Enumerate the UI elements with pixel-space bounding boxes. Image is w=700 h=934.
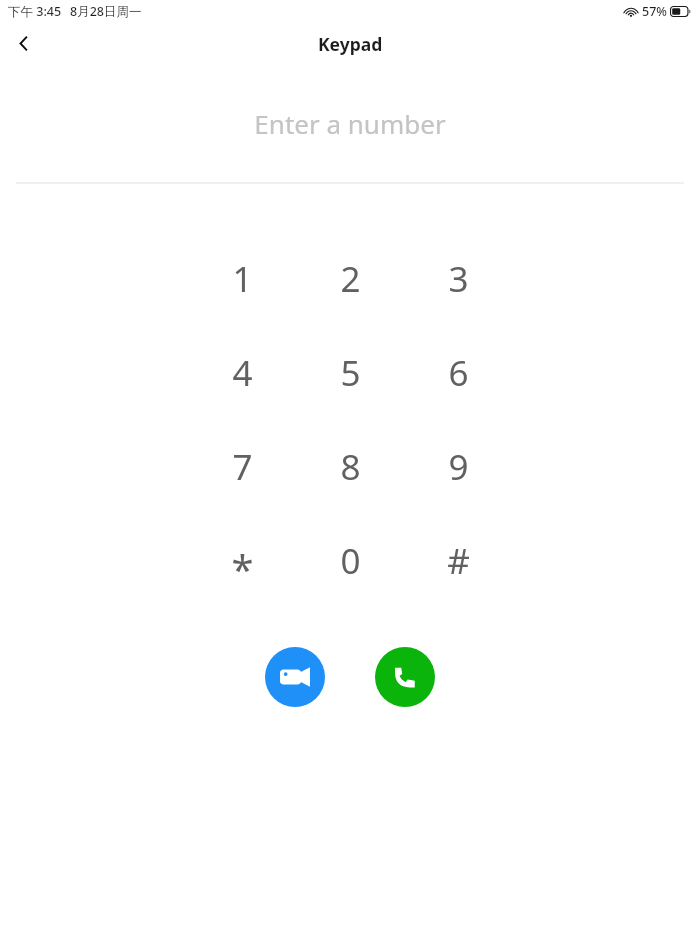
button[interactable]: Call [375, 647, 435, 707]
staticText: 下午 3:45 [8, 3, 62, 20]
staticText: # [447, 537, 470, 585]
staticText: Enter a number [254, 106, 446, 141]
button[interactable]: 9 [404, 420, 512, 514]
button[interactable]: Video call [265, 647, 325, 707]
staticText: 7 [232, 443, 253, 491]
button[interactable]: # [404, 514, 512, 608]
staticText: 6 [448, 349, 469, 397]
button[interactable]: * [188, 514, 296, 608]
staticText: 1 [232, 255, 253, 303]
staticText: 9 [448, 443, 469, 491]
staticText: 3 [448, 255, 469, 303]
staticText: 8 [340, 443, 361, 491]
staticText: 4 [232, 349, 253, 397]
button[interactable]: 2 [296, 232, 404, 326]
button[interactable]: Enter a number [0, 64, 700, 182]
staticText: * [231, 541, 254, 595]
button[interactable]: 8 [296, 420, 404, 514]
button[interactable]: 5 [296, 326, 404, 420]
button[interactable]: 0 [296, 514, 404, 608]
button[interactable]: Back [0, 23, 46, 64]
staticText: 0 [340, 537, 361, 585]
staticText: Keypad [318, 32, 383, 56]
staticText: 57% [642, 3, 667, 20]
staticText: 8月28日周一 [70, 3, 142, 20]
staticText: 5 [340, 349, 361, 397]
button[interactable]: 7 [188, 420, 296, 514]
staticText: 2 [340, 255, 361, 303]
button[interactable]: 1 [188, 232, 296, 326]
button[interactable]: 6 [404, 326, 512, 420]
button[interactable]: 3 [404, 232, 512, 326]
button[interactable]: 4 [188, 326, 296, 420]
